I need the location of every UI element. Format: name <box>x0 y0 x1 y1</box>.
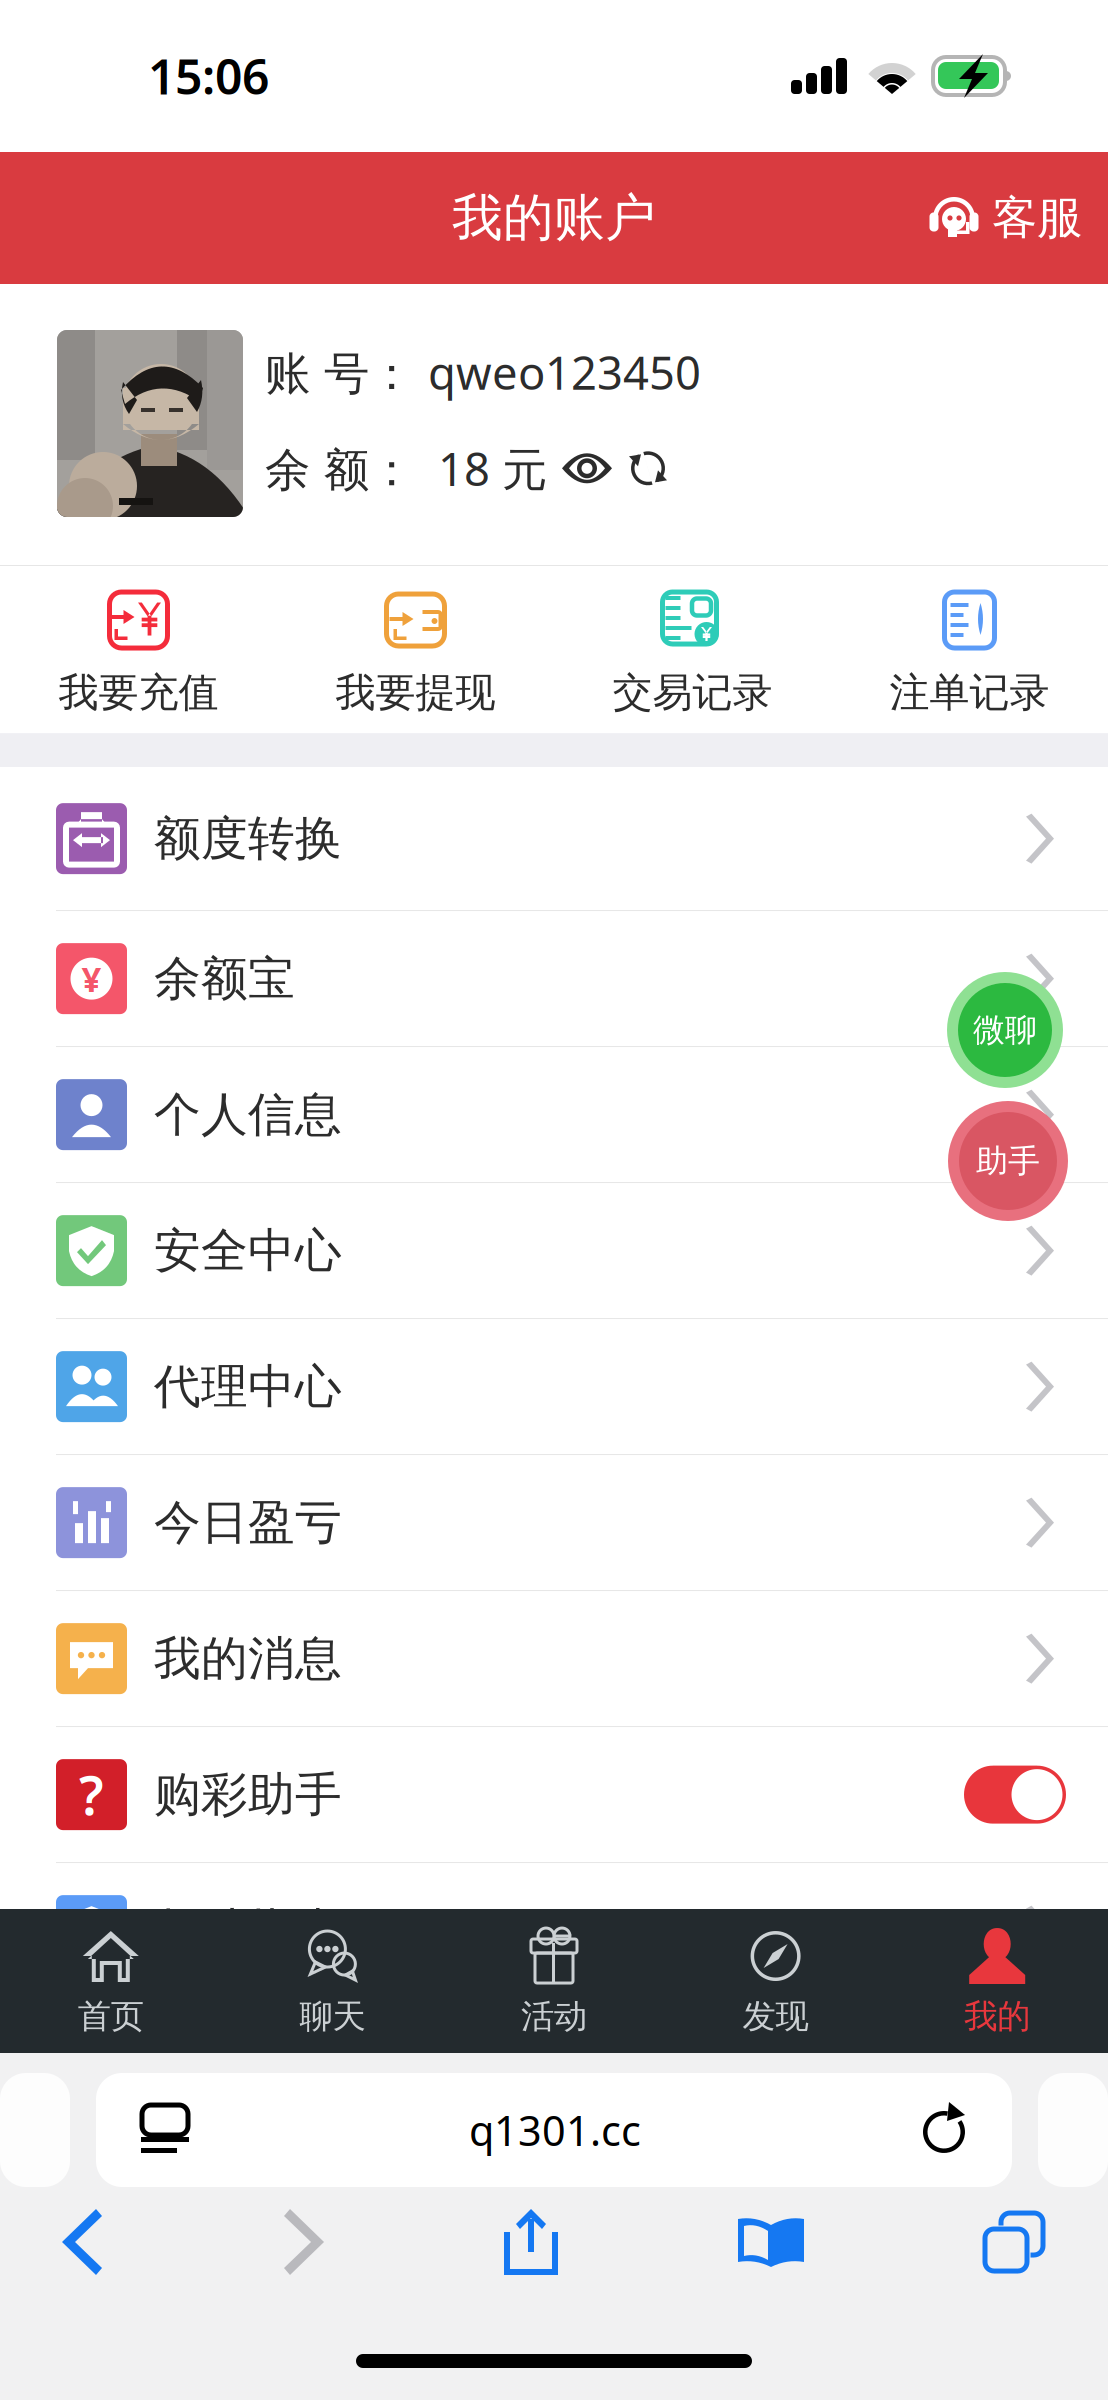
staticText: 我的 <box>964 1996 1030 2037</box>
button[interactable]: 帮助指南 <box>0 1863 1108 1999</box>
button[interactable]: 我要提现 <box>277 566 554 733</box>
button[interactable]: Reader view <box>96 2104 190 2156</box>
button[interactable]: 我的消息 <box>0 1591 1108 1727</box>
button[interactable]: ? <box>0 1727 1108 1863</box>
button[interactable]: Reload <box>920 2102 1012 2158</box>
button[interactable]: 安全中心 <box>0 1183 1108 1319</box>
staticText: 注单记录 <box>889 668 1049 717</box>
staticText: 账 号： qweo123450 <box>265 342 701 402</box>
staticText: 余额宝 <box>154 950 295 1007</box>
staticText: 聊天 <box>299 1996 365 2037</box>
staticText: 活动 <box>521 1996 587 2037</box>
button[interactable]: 我要充值 <box>0 566 277 733</box>
button[interactable]: 交易记录 <box>554 566 831 733</box>
button[interactable]: 助手 <box>948 1101 1068 1221</box>
button[interactable]: 今日盈亏 <box>0 1455 1108 1591</box>
staticText: 余 额： 18 元 <box>265 438 547 498</box>
button[interactable]: Bookmarks <box>736 2214 806 2270</box>
button[interactable]: 注单记录 <box>831 566 1108 733</box>
staticText: q1301.cc <box>469 2103 641 2157</box>
button[interactable]: 代理中心 <box>0 1319 1108 1455</box>
staticText: 首页 <box>78 1996 144 2037</box>
staticText: 我要提现 <box>335 668 495 717</box>
button[interactable]: Tabs <box>984 2212 1044 2272</box>
staticText: 助手 <box>976 1141 1040 1181</box>
button[interactable]: 首页 <box>0 1927 222 2037</box>
staticText: 我要充值 <box>58 668 218 717</box>
staticText: 额度转换 <box>154 810 342 867</box>
staticText: 购彩助手 <box>154 1766 342 1823</box>
button[interactable]: Share <box>504 2207 558 2277</box>
button[interactable]: 聊天 <box>222 1927 443 2037</box>
button[interactable]: 活动 <box>443 1927 665 2037</box>
button[interactable]: 微聊 <box>947 972 1063 1088</box>
button[interactable]: 发现 <box>665 1927 886 2037</box>
staticText: 我的账户 <box>452 187 656 249</box>
button[interactable]: 额度转换 <box>0 767 1108 911</box>
button[interactable]: Forward <box>282 2209 326 2275</box>
staticText: 我的消息 <box>154 1630 342 1687</box>
staticText: 客服 <box>992 190 1082 246</box>
staticText: 个人信息 <box>154 1086 342 1143</box>
staticText: 帮助指南 <box>154 1902 342 1959</box>
staticText: ¥ <box>81 956 101 1002</box>
button[interactable]: 个人信息 <box>0 1047 1108 1183</box>
button[interactable]: 我的 <box>886 1927 1108 2037</box>
staticText: 今日盈亏 <box>154 1494 342 1551</box>
staticText: 代理中心 <box>154 1358 342 1415</box>
staticText: 发现 <box>743 1996 809 2037</box>
staticText: 交易记录 <box>612 668 772 717</box>
button[interactable]: ¥ <box>0 911 1108 1047</box>
button[interactable]: Back <box>60 2209 104 2275</box>
button[interactable]: 客服 <box>930 170 1108 266</box>
staticText: 安全中心 <box>154 1222 342 1279</box>
staticText: ? <box>79 1759 104 1830</box>
staticText: 15:06 <box>148 44 269 108</box>
staticText: 微聊 <box>973 1010 1037 1050</box>
